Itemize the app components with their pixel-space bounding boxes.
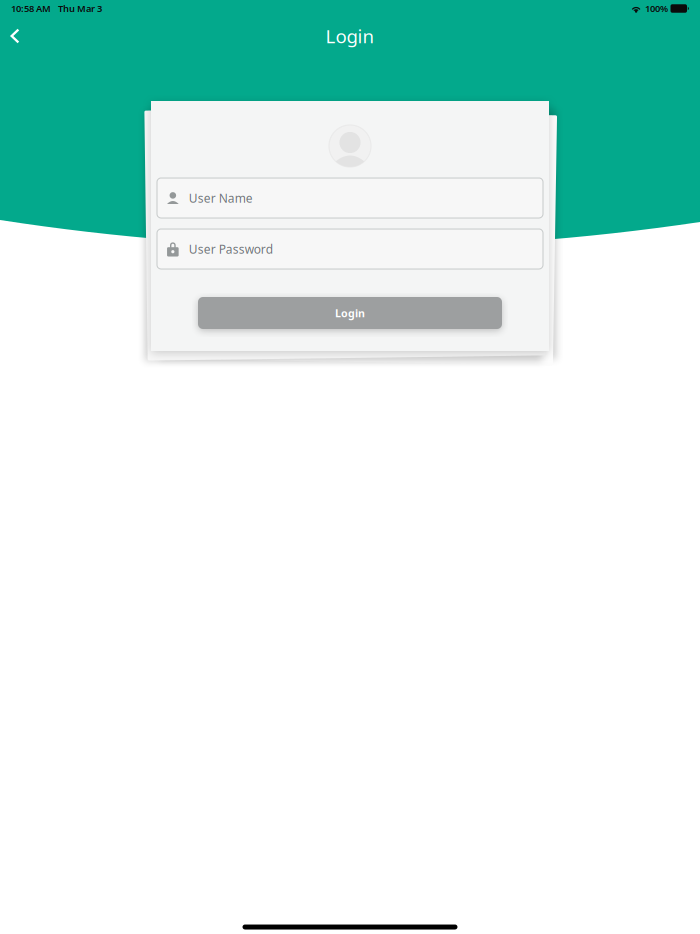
button[interactable]: Back	[0, 21, 30, 51]
staticText: User Password	[189, 241, 273, 257]
staticText: User Name	[189, 190, 253, 206]
staticText: 10:58 AM	[11, 2, 51, 15]
staticText: Login	[335, 306, 365, 320]
staticText: Login	[325, 24, 374, 48]
button[interactable]: Login	[198, 297, 502, 329]
staticText: 100%	[645, 2, 668, 15]
staticText: Thu Mar 3	[58, 2, 102, 15]
